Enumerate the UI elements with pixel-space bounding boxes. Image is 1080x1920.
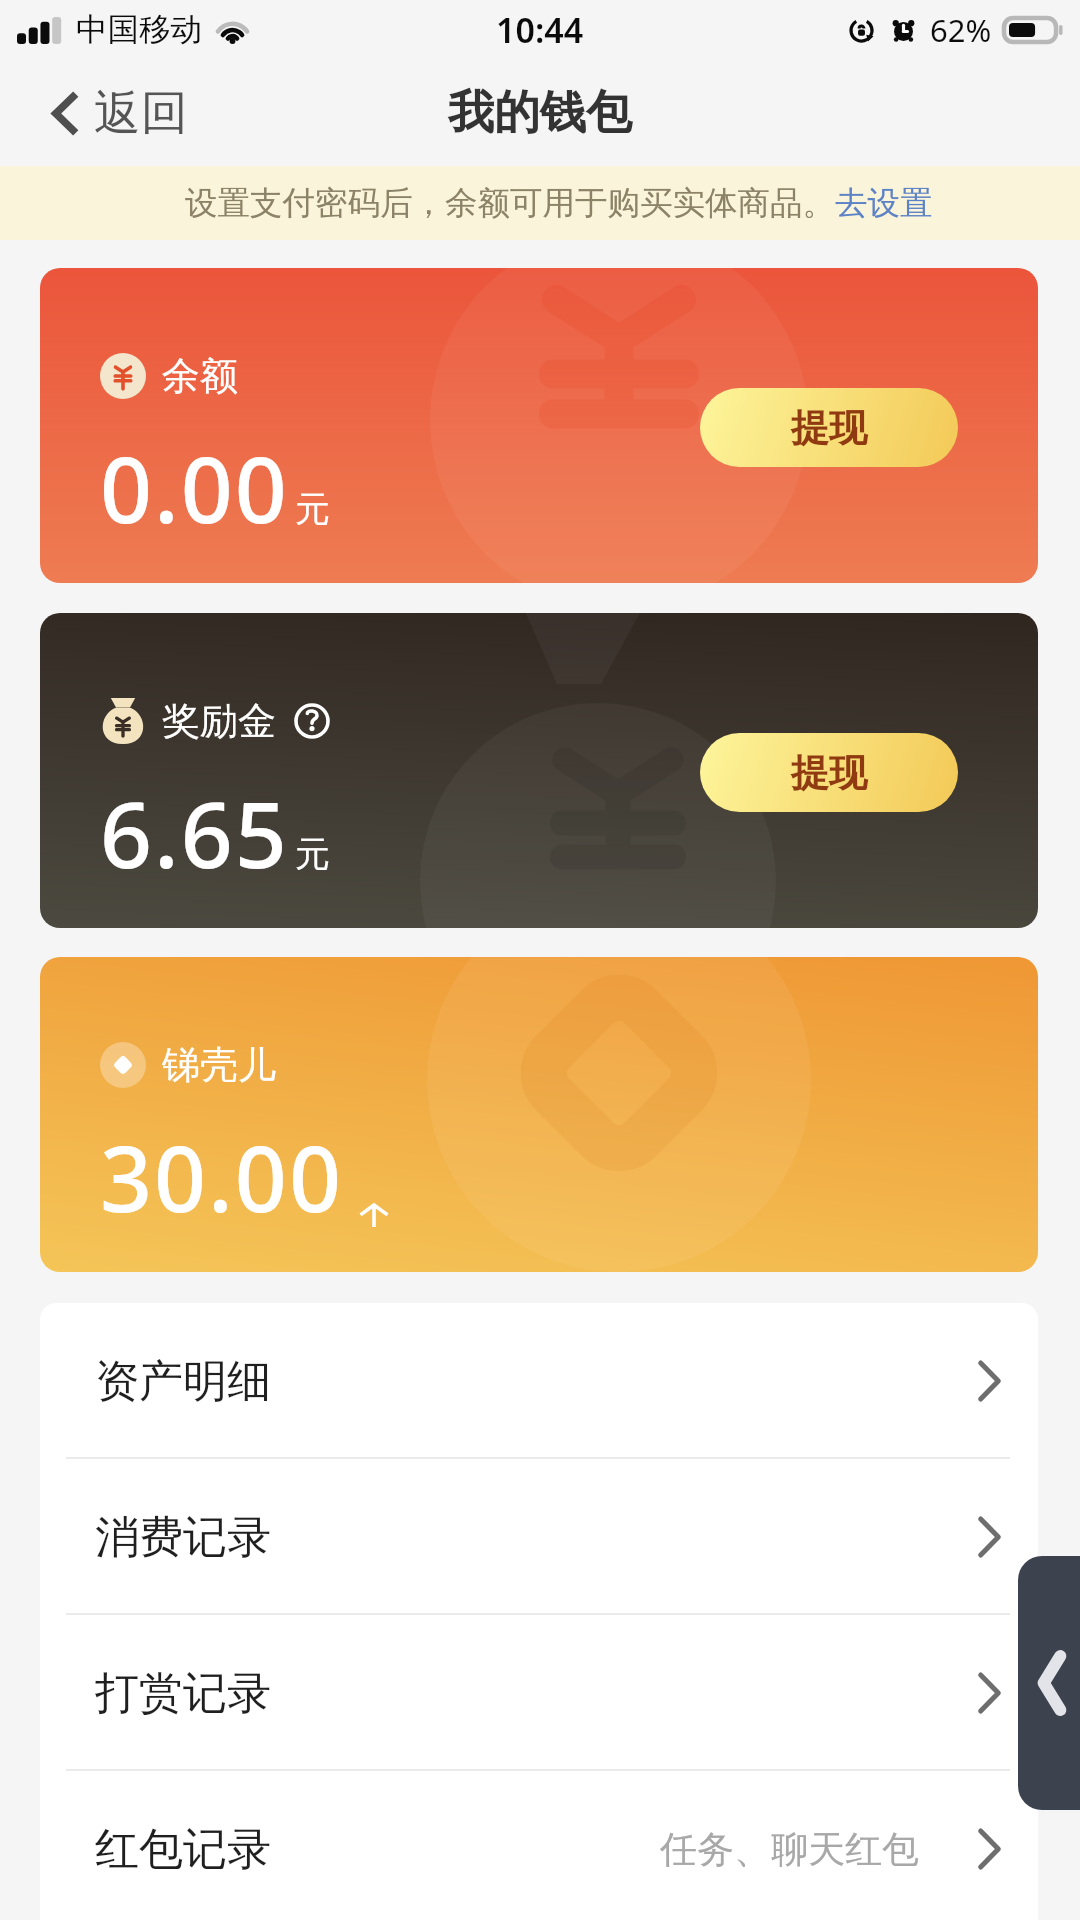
- staticText: 余额: [162, 352, 238, 400]
- staticText: 元: [295, 832, 330, 876]
- staticText: 62%: [930, 9, 992, 51]
- button[interactable]: 锑壳儿: [40, 957, 1038, 1272]
- staticText: 10:44: [496, 7, 584, 53]
- button[interactable]: Expand side panel: [1018, 1556, 1080, 1810]
- staticText: 红包记录: [95, 1822, 271, 1877]
- staticText: 任务、聊天红包: [660, 1826, 919, 1873]
- staticText: 我的钱包: [448, 84, 632, 142]
- staticText: 打赏记录: [95, 1666, 271, 1721]
- button[interactable]: 提现: [700, 733, 958, 812]
- button[interactable]: 红包记录: [40, 1771, 1038, 1920]
- button[interactable]: 打赏记录: [40, 1615, 1038, 1771]
- button[interactable]: Back: [52, 84, 188, 143]
- staticText: 奖励金: [162, 697, 276, 745]
- button[interactable]: 提现: [700, 388, 958, 467]
- staticText: 6.65: [100, 771, 289, 895]
- staticText: 中国移动: [76, 10, 202, 50]
- staticText: 提现: [791, 404, 867, 452]
- staticText: 锑壳儿: [162, 1041, 276, 1089]
- staticText: 返回: [94, 84, 188, 143]
- staticText: 元: [295, 487, 330, 531]
- button[interactable]: 余额: [40, 268, 1038, 583]
- other: Back: [52, 91, 79, 136]
- staticText: 提现: [791, 749, 867, 797]
- button[interactable]: 奖励金: [40, 613, 1038, 928]
- staticText: 消费记录: [95, 1510, 271, 1565]
- button[interactable]: 去设置: [835, 183, 933, 224]
- staticText: 0.00: [100, 426, 289, 550]
- button[interactable]: 资产明细: [40, 1303, 1038, 1459]
- other: Help: [294, 703, 330, 739]
- staticText: 30.00: [100, 1115, 343, 1239]
- staticText: 资产明细: [95, 1354, 271, 1409]
- staticText: 设置支付密码后，余额可用于购买实体商品。: [185, 183, 835, 224]
- button[interactable]: 消费记录: [40, 1459, 1038, 1615]
